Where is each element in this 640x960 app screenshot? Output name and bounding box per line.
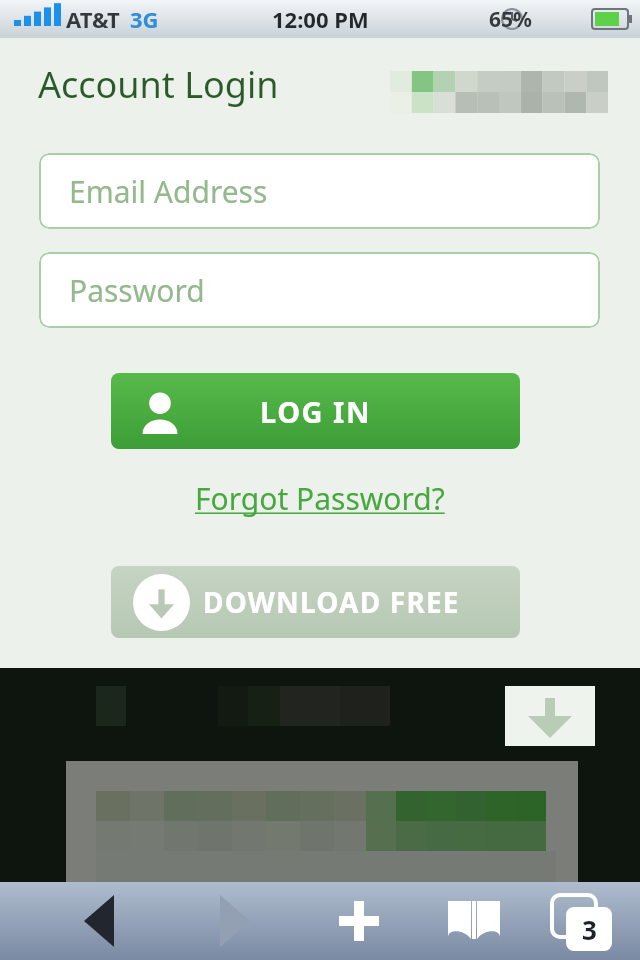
- staticText: 12:00 PM: [272, 4, 369, 34]
- button[interactable]: Forgot Password?: [187, 474, 453, 523]
- button[interactable]: Email Address: [39, 153, 600, 229]
- button[interactable]: Scroll down: [505, 686, 595, 746]
- button[interactable]: Password: [39, 252, 600, 328]
- staticText: 3: [582, 912, 597, 947]
- button[interactable]: LOG IN: [111, 373, 520, 449]
- button[interactable]: Back: [26, 882, 154, 960]
- staticText: Email Address: [69, 171, 268, 212]
- staticText: DOWNLOAD FREE: [203, 583, 460, 621]
- button[interactable]: Forward: [154, 882, 282, 960]
- button[interactable]: Add bookmark: [282, 882, 410, 960]
- staticText: Password: [69, 270, 205, 311]
- staticText: LOG IN: [260, 392, 371, 431]
- staticText: 3G: [130, 4, 159, 34]
- staticText: AT&T: [66, 4, 120, 34]
- staticText: 65%: [489, 5, 532, 34]
- staticText: Account Login: [38, 60, 279, 109]
- button[interactable]: Bookmarks: [410, 882, 538, 960]
- button[interactable]: Tabs, 3 open: [538, 882, 640, 960]
- staticText: Forgot Password?: [195, 478, 445, 519]
- button[interactable]: DOWNLOAD FREE: [111, 566, 520, 638]
